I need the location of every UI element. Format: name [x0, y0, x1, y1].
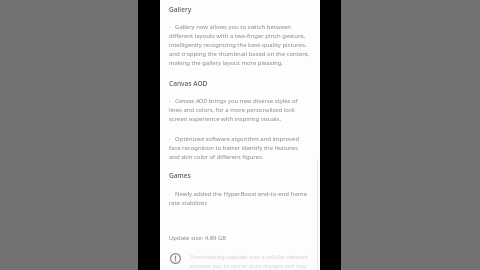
- staticText: · Newly added the HyperBoost end-to-end …: [169, 190, 308, 207]
- staticText: · Optimized software algorithm and impro…: [169, 135, 300, 161]
- staticText: Downloading updates over a cellular netw…: [190, 253, 309, 270]
- button[interactable]: More information about data charges: [170, 253, 181, 264]
- staticText: Gallery: [169, 5, 192, 14]
- staticText: · Gallery now allows you to switch betwe…: [169, 23, 310, 67]
- staticText: · Canvas AOD brings you new diverse styl…: [169, 97, 298, 123]
- staticText: Canvas AOD: [169, 79, 208, 88]
- staticText: Games: [169, 171, 191, 180]
- staticText: Update size: 4.89 GB: [169, 234, 227, 242]
